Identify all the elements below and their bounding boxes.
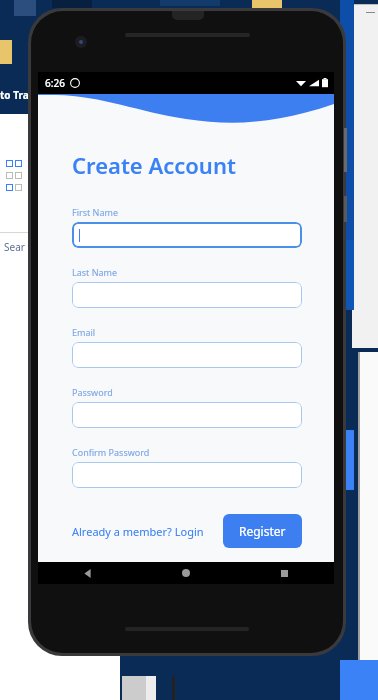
staticText: Create Account bbox=[72, 150, 236, 180]
button[interactable] bbox=[72, 282, 302, 308]
staticText: Already a member? Login bbox=[72, 524, 204, 539]
staticText: 6:26 bbox=[45, 76, 65, 90]
button[interactable] bbox=[72, 402, 302, 428]
button[interactable]: Back bbox=[38, 562, 136, 584]
button[interactable]: Recents bbox=[235, 562, 334, 584]
staticText: Email bbox=[72, 326, 96, 338]
staticText: Confirm Password bbox=[72, 446, 150, 458]
staticText: Register bbox=[239, 523, 286, 539]
button[interactable]: Register bbox=[223, 514, 302, 548]
staticText: Sear bbox=[4, 240, 25, 254]
button[interactable] bbox=[72, 222, 302, 248]
staticText: Last Name bbox=[72, 266, 118, 278]
button[interactable] bbox=[72, 462, 302, 488]
button[interactable]: Already a member? Login bbox=[72, 518, 204, 545]
button[interactable] bbox=[72, 342, 302, 368]
button[interactable]: Home bbox=[136, 562, 235, 584]
staticText: Password bbox=[72, 386, 113, 398]
staticText: First Name bbox=[72, 206, 118, 218]
staticText: to Tra bbox=[0, 88, 29, 102]
